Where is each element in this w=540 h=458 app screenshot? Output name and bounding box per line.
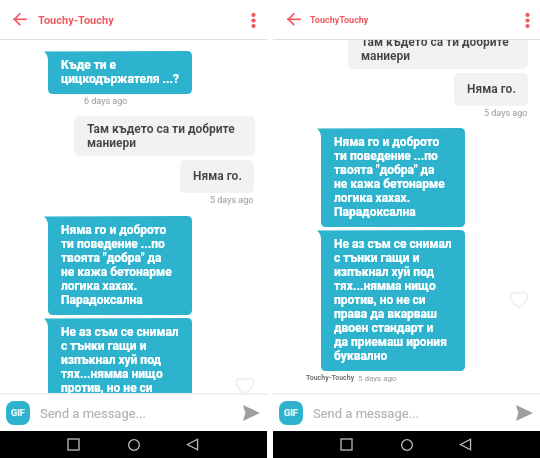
staticText: Няма го и доброто ти поведение ...по тво… (334, 135, 445, 219)
staticText: Няма го. (467, 82, 516, 96)
staticText: 6 days ago (84, 96, 128, 107)
button[interactable]: GIF (6, 401, 30, 425)
staticText: Къде ти е цицкодържателя ...? (61, 58, 179, 86)
button[interactable]: Няма го. (454, 73, 528, 106)
staticText: Там където са ти добрите маниери (361, 40, 509, 63)
staticText: Не аз съм се снимал с тънки гащи и изпък… (334, 237, 452, 363)
button[interactable]: Back (452, 431, 479, 458)
button[interactable]: Back (279, 5, 309, 35)
staticText: Няма го. (193, 169, 242, 183)
button[interactable]: Там където са ти добрите маниери (348, 40, 528, 69)
staticText: GIF (284, 408, 298, 419)
staticText: Send a message... (313, 406, 419, 421)
button[interactable]: Няма го. (180, 160, 254, 193)
button[interactable]: Home (393, 431, 420, 458)
button[interactable]: Recents (60, 431, 87, 458)
button[interactable]: Back (179, 431, 206, 458)
staticText: Touchy-Touchy (38, 14, 114, 27)
button[interactable]: GIF (279, 401, 303, 425)
button[interactable]: Къде ти е цицкодържателя ...? (44, 51, 192, 94)
staticText: Там където са ти добрите маниери (87, 122, 235, 150)
button[interactable]: Няма го и доброто ти поведение ...по тво… (317, 128, 465, 227)
staticText: GIF (11, 408, 25, 419)
staticText: Няма го и доброто ти поведение ...по тво… (61, 223, 172, 307)
button[interactable]: Не аз съм се снимал с тънки гащи и изпък… (44, 318, 192, 393)
staticText: 5 days ago (484, 108, 528, 119)
button[interactable]: More options (241, 8, 265, 32)
staticText: Send a message... (40, 406, 146, 421)
staticText: 5 days ago (358, 374, 397, 383)
button[interactable]: Send (513, 402, 535, 424)
staticText: Touchy-Touchy (306, 374, 358, 382)
staticText: 5 days ago (210, 195, 254, 206)
staticText: Не аз съм се снимал с тънки гащи и изпък… (61, 325, 179, 393)
button[interactable]: Там където са ти добрите маниери (74, 116, 255, 156)
button[interactable]: Back (5, 5, 35, 35)
button[interactable]: Home (120, 431, 147, 458)
button[interactable]: Like (506, 285, 532, 311)
button[interactable]: Send (240, 402, 262, 424)
button[interactable]: Like (232, 371, 258, 393)
button[interactable]: More options (515, 8, 539, 32)
button[interactable]: Няма го и доброто ти поведение ...по тво… (44, 216, 192, 315)
button[interactable]: Recents (333, 431, 360, 458)
button[interactable]: Не аз съм се снимал с тънки гащи и изпък… (317, 230, 465, 371)
staticText: TouchyTouchy (310, 15, 369, 26)
